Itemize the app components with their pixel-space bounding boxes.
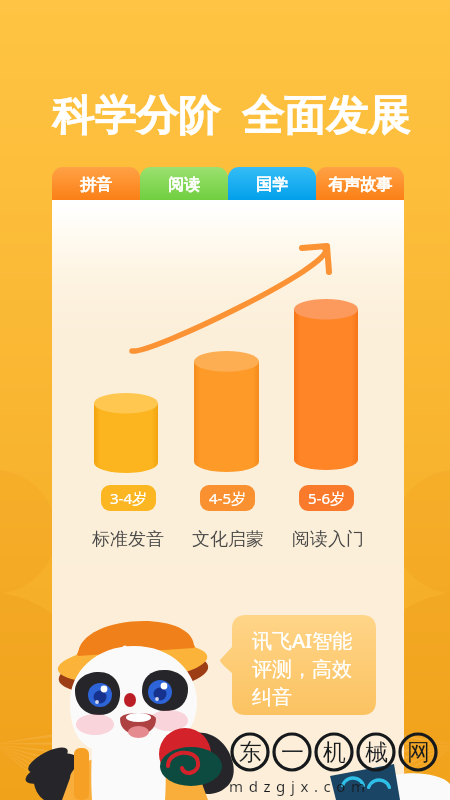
staticText: 网 — [407, 738, 430, 767]
button[interactable]: 国学 — [228, 167, 316, 201]
staticText: 拼音 — [80, 175, 112, 195]
staticText: mdzgjx.com — [229, 776, 371, 796]
staticText: 东 — [239, 738, 262, 767]
staticText: 文化启蒙 — [192, 528, 264, 551]
button[interactable]: 4-5岁 — [200, 485, 255, 511]
staticText: 有声故事 — [328, 175, 392, 195]
button[interactable]: 阅读 — [140, 167, 228, 201]
staticText: 国学 — [256, 175, 288, 195]
button[interactable]: 拼音 — [52, 167, 140, 201]
staticText: 一 — [281, 738, 304, 767]
button[interactable]: 有声故事 — [316, 167, 404, 201]
other: Mascot — [0, 0, 450, 800]
button[interactable]: 3-4岁 — [101, 485, 156, 511]
staticText: 阅读 — [168, 175, 200, 195]
staticText: 械 — [365, 738, 388, 767]
button[interactable]: 5-6岁 — [299, 485, 354, 511]
staticText: 机 — [323, 738, 346, 767]
staticText: 阅读入门 — [292, 528, 364, 551]
button[interactable]: 科学分阶 全面发展 — [52, 85, 410, 142]
button[interactable]: 讯飞AI智能 评测，高效 纠音 — [232, 615, 376, 715]
staticText: 讯飞AI智能 评测，高效 纠音 — [252, 627, 353, 710]
staticText: 4-5岁 — [209, 488, 246, 508]
staticText: 5-6岁 — [308, 488, 345, 508]
staticText: 3-4岁 — [110, 488, 147, 508]
staticText: 标准发音 — [92, 528, 164, 551]
staticText: 科学分阶 全面发展 — [52, 85, 410, 142]
